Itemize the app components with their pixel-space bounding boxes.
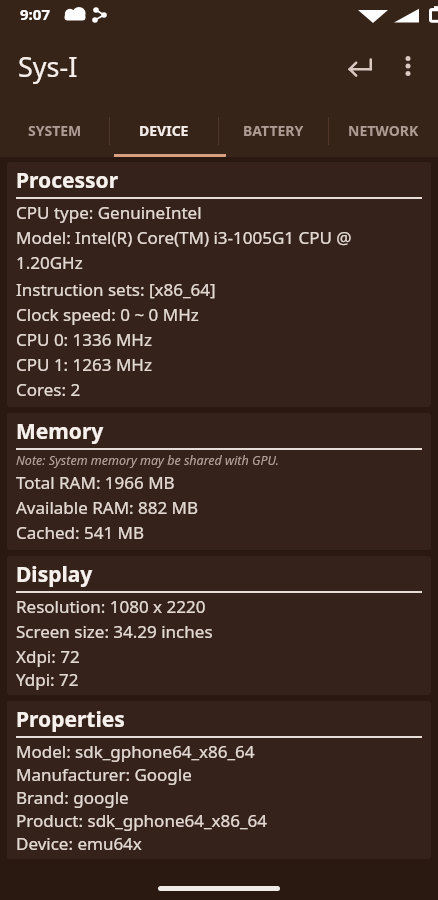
staticText: CPU type: GenuineIntel xyxy=(16,201,202,224)
button[interactable]: More options xyxy=(384,42,432,90)
button[interactable]: DEVICE xyxy=(109,104,218,157)
staticText: Manufacturer: Google xyxy=(16,763,192,786)
staticText: Brand: google xyxy=(16,786,129,809)
staticText: Memory xyxy=(16,417,104,446)
staticText: DEVICE xyxy=(139,121,189,140)
button[interactable]: BATTERY xyxy=(218,104,328,157)
button[interactable]: Properties xyxy=(7,701,431,859)
staticText: Product: sdk_gphone64_x86_64 xyxy=(16,809,267,832)
staticText: Resolution: 1080 x 2220 xyxy=(16,595,206,618)
staticText: Cached: 541 MB xyxy=(16,521,145,544)
staticText: Clock speed: 0 ~ 0 MHz xyxy=(16,303,199,326)
staticText: Properties xyxy=(16,705,125,734)
staticText: BATTERY xyxy=(243,121,304,140)
staticText: Instruction sets: [x86_64] xyxy=(16,278,216,301)
button[interactable]: Processor xyxy=(7,162,431,407)
staticText: Note: System memory may be shared with G… xyxy=(16,452,279,469)
staticText: 9:07 xyxy=(20,4,50,24)
button[interactable]: Display xyxy=(7,556,431,695)
staticText: Ydpi: 72 xyxy=(16,668,79,691)
staticText: Model: sdk_gphone64_x86_64 xyxy=(16,740,255,763)
staticText: Model: Intel(R) Core(TM) i3-1005G1 CPU @ xyxy=(16,226,352,249)
staticText: Screen size: 34.29 inches xyxy=(16,620,213,643)
staticText: Cores: 2 xyxy=(16,378,81,401)
button[interactable]: Back xyxy=(336,42,384,90)
staticText: 1.20GHz xyxy=(16,251,83,274)
staticText: Display xyxy=(16,560,93,589)
staticText: NETWORK xyxy=(348,121,419,140)
staticText: CPU 0: 1336 MHz xyxy=(16,328,152,351)
button[interactable]: Memory xyxy=(7,413,431,550)
staticText: Total RAM: 1966 MB xyxy=(16,471,175,494)
staticText: Sys-I xyxy=(18,48,78,85)
staticText: SYSTEM xyxy=(28,121,82,140)
button[interactable]: NETWORK xyxy=(328,104,438,157)
staticText: Device: emu64x xyxy=(16,832,142,855)
staticText: CPU 1: 1263 MHz xyxy=(16,353,152,376)
staticText: Available RAM: 882 MB xyxy=(16,496,199,519)
staticText: Xdpi: 72 xyxy=(16,645,80,668)
staticText: Processor xyxy=(16,166,119,195)
button[interactable]: SYSTEM xyxy=(0,104,109,157)
